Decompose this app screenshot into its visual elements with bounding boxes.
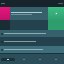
- button[interactable]: Now playing: [10, 7, 48, 20]
- button[interactable]: [0, 46, 64, 53]
- button[interactable]: Profile: [48, 54, 64, 64]
- button[interactable]: Play: [48, 7, 64, 20]
- button[interactable]: Search: [16, 54, 32, 64]
- button[interactable]: Home: [0, 54, 16, 64]
- button[interactable]: [0, 30, 64, 37]
- button[interactable]: Library: [32, 54, 48, 64]
- button[interactable]: [0, 38, 64, 45]
- button[interactable]: Featured: [0, 7, 10, 20]
